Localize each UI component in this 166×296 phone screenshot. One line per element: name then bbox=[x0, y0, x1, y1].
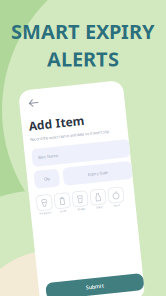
button[interactable]: Juice bbox=[54, 191, 69, 211]
button[interactable]: Dairy bbox=[90, 191, 105, 211]
button[interactable]: Fruit bbox=[108, 191, 123, 211]
staticText: Add Item bbox=[36, 113, 92, 129]
staticText: Submit bbox=[76, 284, 94, 291]
staticText: Dairy bbox=[95, 207, 101, 211]
staticText: Snacks bbox=[76, 207, 83, 211]
staticText: Record the exact name and date so it won… bbox=[36, 132, 115, 137]
button[interactable]: Back bbox=[36, 92, 51, 105]
staticText: Item Name bbox=[42, 150, 62, 156]
button[interactable]: Snacks bbox=[72, 191, 87, 211]
button[interactable]: Veggies bbox=[36, 191, 51, 211]
staticText: Qty bbox=[46, 172, 52, 178]
staticText: Juice bbox=[58, 207, 65, 211]
button[interactable]: Submit bbox=[36, 279, 134, 296]
staticText: SMART EXPIRY bbox=[11, 18, 155, 45]
staticText: ALERTS bbox=[47, 46, 119, 72]
staticText: Veggies bbox=[38, 207, 50, 211]
staticText: Expiry Date bbox=[90, 172, 110, 178]
